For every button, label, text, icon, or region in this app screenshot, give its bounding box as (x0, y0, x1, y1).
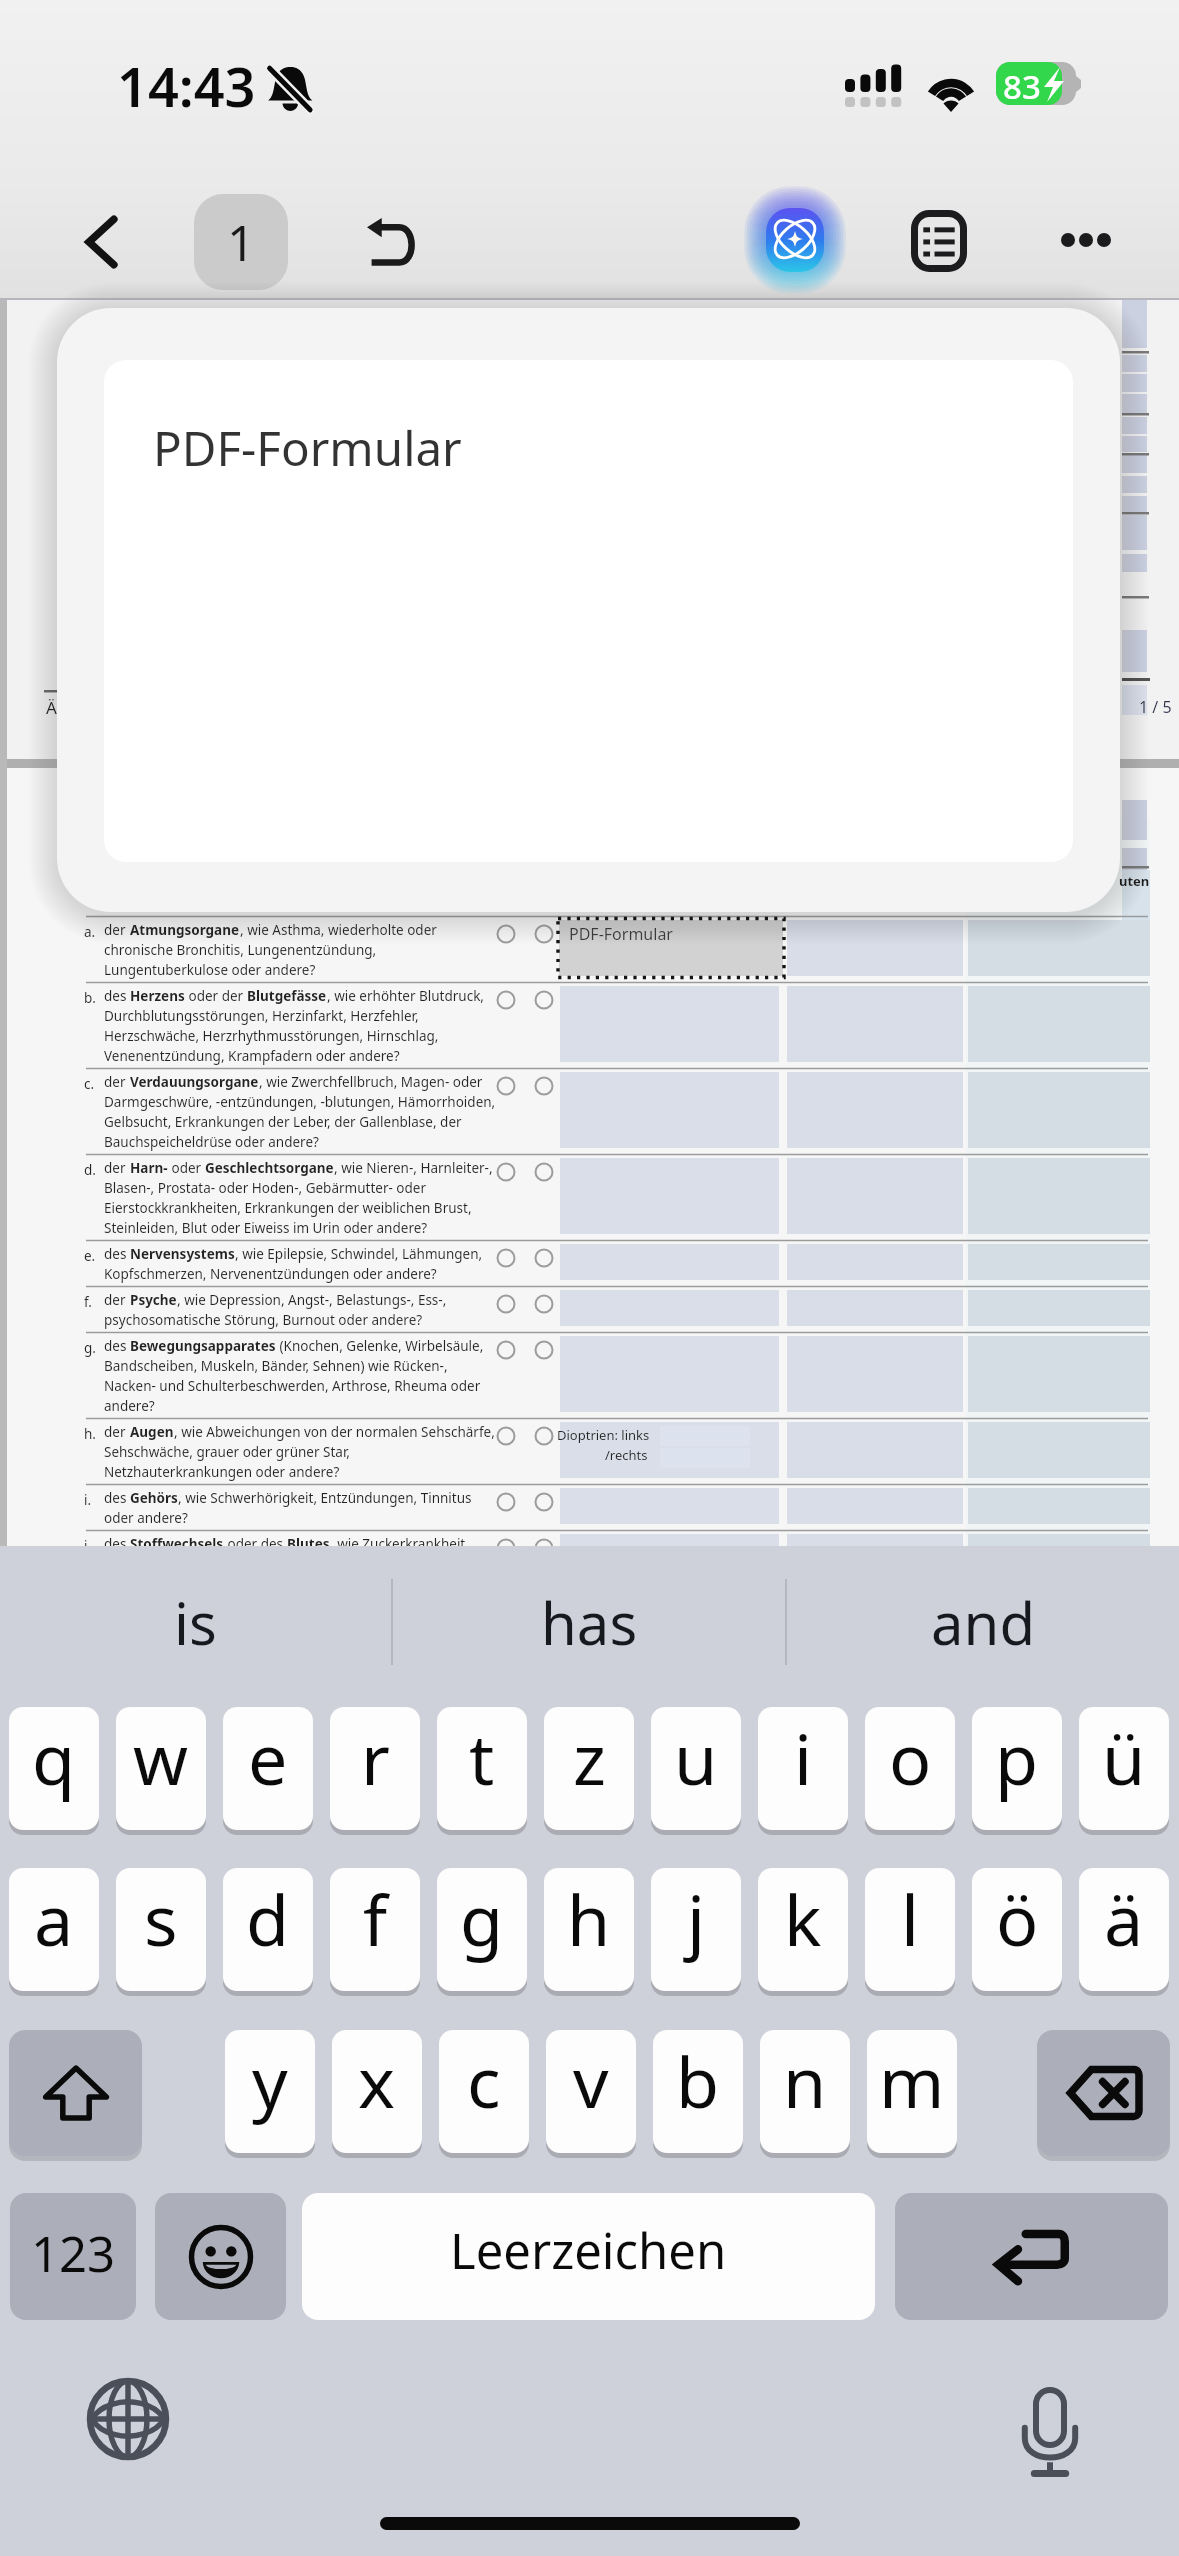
button[interactable]: PDF-Formular (104, 360, 1073, 862)
button[interactable]: and (787, 1562, 1179, 1682)
staticText: Gehörs (130, 1489, 178, 1507)
staticText: Stoffwechsels (130, 1535, 224, 1553)
staticText: t (469, 1710, 495, 1805)
button[interactable]: r (330, 1707, 420, 1830)
button[interactable]: 123 (10, 2193, 136, 2320)
staticText: 123 (31, 2220, 116, 2287)
button[interactable]: Leerzeichen (302, 2193, 875, 2320)
button[interactable]: s (116, 1868, 206, 1991)
staticText: a (34, 1871, 74, 1966)
button[interactable]: j (651, 1868, 741, 1991)
button[interactable]: Shift (9, 2030, 142, 2156)
staticText: uten (1119, 872, 1150, 890)
staticText: chronische Bronchitis, Lungenentzündung, (104, 941, 377, 959)
staticText: , wie erhöhter Blutdruck, (327, 987, 484, 1005)
staticText: Blutes (287, 1535, 330, 1553)
staticText: Netzhauterkrankungen oder andere? (104, 1463, 340, 1481)
button[interactable]: ü (1079, 1707, 1169, 1830)
staticText: Verdauungsorgane (130, 1073, 259, 1091)
staticText: m (879, 2033, 945, 2128)
staticText: Nacken- und Schulterbeschwerden, Arthros… (104, 1377, 481, 1395)
button[interactable]: Back (58, 198, 146, 286)
staticText: Bauchspeicheldrüse oder andere? (104, 1133, 319, 1151)
button[interactable]: k (758, 1868, 848, 1991)
button[interactable]: 1 (194, 194, 288, 290)
button[interactable]: c (439, 2030, 529, 2153)
staticText: , wie Abweichungen von der normalen Sehs… (174, 1423, 495, 1441)
staticText: e. (84, 1247, 96, 1265)
button[interactable]: m (867, 2030, 957, 2153)
staticText: f. (84, 1293, 92, 1311)
staticText: p (995, 1710, 1039, 1805)
staticText: g. (84, 1339, 96, 1357)
button[interactable]: Dictate (990, 2373, 1110, 2493)
button[interactable]: o (865, 1707, 955, 1830)
button[interactable]: d (223, 1868, 313, 1991)
staticText: d (246, 1871, 290, 1966)
staticText: i (794, 1710, 813, 1805)
button[interactable]: w (116, 1707, 206, 1830)
staticText: w (133, 1710, 189, 1805)
button[interactable]: p (972, 1707, 1062, 1830)
staticText: a. (84, 923, 96, 941)
button[interactable]: l (865, 1868, 955, 1991)
button[interactable]: is (0, 1562, 391, 1682)
button[interactable]: Change keyboard (68, 2359, 188, 2479)
button[interactable]: g (437, 1868, 527, 1991)
staticText: z (573, 1710, 606, 1805)
staticText: oder andere? (104, 1509, 188, 1527)
staticText: o (889, 1710, 932, 1805)
staticText: is (174, 1583, 217, 1662)
staticText: /rechts (605, 1446, 648, 1464)
button[interactable]: More options (1040, 196, 1128, 284)
button[interactable]: q (9, 1707, 99, 1830)
staticText: oder der (185, 987, 247, 1005)
staticText: der (104, 1073, 130, 1091)
staticText: j (687, 1871, 706, 1966)
button[interactable]: i (758, 1707, 848, 1830)
staticText: , wie Schwerhörigkeit, Entzündungen, Tin… (178, 1489, 472, 1507)
button[interactable]: Outline (895, 197, 983, 285)
button[interactable]: h (544, 1868, 634, 1991)
staticText: Augen (130, 1423, 174, 1441)
button[interactable]: v (546, 2030, 636, 2153)
button[interactable]: ö (972, 1868, 1062, 1991)
staticText: n (783, 2033, 827, 2128)
button[interactable]: e (223, 1707, 313, 1830)
button[interactable]: n (760, 2030, 850, 2153)
staticText: Darmgeschwüre, -entzündungen, -blutungen… (104, 1093, 496, 1111)
staticText: psychosomatische Störung, Burnout oder a… (104, 1311, 423, 1329)
staticText: andere? (104, 1397, 155, 1415)
staticText: Atmungsorgane (130, 921, 240, 939)
button[interactable]: t (437, 1707, 527, 1830)
button[interactable]: u (651, 1707, 741, 1830)
staticText: der (104, 1159, 130, 1177)
staticText: h (567, 1871, 611, 1966)
button[interactable]: y (225, 2030, 315, 2153)
button[interactable]: b (653, 2030, 743, 2153)
staticText: d. (84, 1161, 96, 1179)
staticText: , wie Depression, Angst-, Belastungs-, E… (177, 1291, 447, 1309)
button[interactable]: ä (1079, 1868, 1169, 1991)
button[interactable]: Emoji (155, 2193, 286, 2320)
button[interactable]: has (393, 1562, 785, 1682)
staticText: , wie Zuckerkrankheit, (330, 1535, 469, 1553)
staticText: h. (84, 1425, 96, 1443)
button[interactable]: Backspace (1037, 2030, 1170, 2156)
staticText: f (363, 1871, 388, 1966)
button[interactable]: Undo (346, 197, 434, 285)
staticText: des (104, 1337, 130, 1355)
staticText: b (676, 2033, 720, 2128)
button[interactable]: x (332, 2030, 422, 2153)
staticText: g (460, 1871, 504, 1966)
staticText: (Knochen, Gelenke, Wirbelsäule, (276, 1337, 484, 1355)
button[interactable]: AI Assistant (750, 194, 840, 284)
staticText: j. (84, 1537, 92, 1555)
button[interactable]: Return (895, 2193, 1168, 2320)
button[interactable]: z (544, 1707, 634, 1830)
button[interactable]: a (9, 1868, 99, 1991)
staticText: Eierstockkrankheiten, Erkrankungen der w… (104, 1199, 472, 1217)
button[interactable]: f (330, 1868, 420, 1991)
staticText: des (104, 987, 130, 1005)
staticText: Leerzeichen (450, 2217, 727, 2284)
